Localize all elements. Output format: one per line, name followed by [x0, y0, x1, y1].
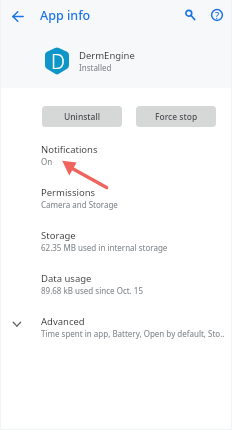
staticText: DermEngine	[79, 49, 135, 62]
staticText: D	[51, 48, 65, 75]
button[interactable]: Search	[177, 2, 203, 28]
staticText: On	[41, 156, 53, 167]
button[interactable]: Storage	[0, 222, 232, 265]
button[interactable]: Data usage	[0, 265, 232, 308]
button[interactable]: Help	[204, 2, 230, 28]
staticText: Permissions	[41, 186, 96, 199]
staticText: Storage	[41, 229, 76, 242]
staticText: 62.35 MB used in internal storage	[41, 242, 168, 253]
staticText: Camera and Storage	[41, 199, 118, 210]
staticText: Time spent in app, Battery, Open by defa…	[41, 328, 225, 339]
button[interactable]: Uninstall	[42, 106, 122, 127]
staticText: App info	[40, 7, 91, 24]
staticText: 89.68 kB used since Oct. 15	[41, 285, 143, 296]
button[interactable]: Permissions	[0, 179, 232, 222]
button[interactable]: Force stop	[136, 106, 216, 127]
staticText: Data usage	[41, 272, 92, 285]
staticText: Uninstall	[64, 111, 101, 123]
button[interactable]: Notifications	[0, 136, 232, 179]
staticText: Force stop	[155, 111, 198, 123]
button[interactable]: Back	[5, 3, 31, 29]
button[interactable]: Advanced	[0, 308, 232, 351]
staticText: Installed	[79, 62, 112, 73]
staticText: Advanced	[41, 315, 85, 328]
staticText: ?	[215, 9, 220, 22]
staticText: Notifications	[41, 143, 98, 156]
